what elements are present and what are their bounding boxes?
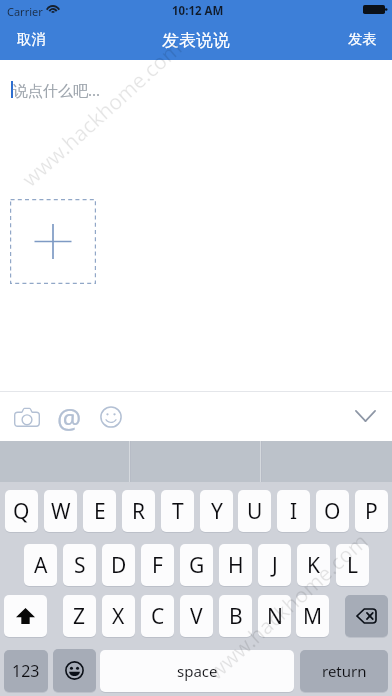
- staticText: S: [74, 551, 86, 580]
- button[interactable]: U: [238, 490, 271, 532]
- button[interactable]: M: [296, 595, 329, 637]
- button[interactable]: Q: [5, 490, 38, 532]
- button[interactable]: Add photo: [10, 199, 96, 284]
- button[interactable]: P: [355, 490, 388, 532]
- button[interactable]: 发表: [336, 20, 392, 58]
- button[interactable]: Backspace: [345, 595, 388, 637]
- button[interactable]: A: [24, 544, 57, 586]
- button[interactable]: I: [277, 490, 310, 532]
- staticText: G: [189, 551, 205, 580]
- staticText: M: [303, 602, 323, 631]
- button[interactable]: L: [336, 544, 369, 586]
- staticText: T: [172, 497, 184, 526]
- staticText: B: [229, 602, 243, 631]
- button[interactable]: K: [297, 544, 330, 586]
- staticText: I: [290, 497, 298, 526]
- button[interactable]: Camera: [9, 401, 45, 433]
- staticText: Y: [211, 497, 223, 526]
- staticText: 发表说说: [162, 30, 230, 51]
- button[interactable]: C: [141, 595, 174, 637]
- button[interactable]: S: [63, 544, 96, 586]
- staticText: X: [112, 602, 125, 631]
- staticText: K: [307, 551, 320, 580]
- staticText: O: [324, 497, 341, 526]
- button[interactable]: E: [83, 490, 116, 532]
- staticText: V: [190, 602, 203, 631]
- staticText: H: [228, 551, 244, 580]
- button[interactable]: 123: [4, 650, 48, 692]
- button[interactable]: F: [141, 544, 174, 586]
- button[interactable]: Emoji keyboard: [53, 649, 96, 692]
- staticText: return: [322, 661, 367, 681]
- staticText: R: [132, 497, 146, 526]
- button[interactable]: H: [219, 544, 252, 586]
- staticText: N: [267, 602, 283, 631]
- staticText: W: [51, 497, 71, 526]
- button[interactable]: return: [300, 650, 388, 692]
- staticText: P: [365, 497, 378, 526]
- button[interactable]: V: [180, 595, 213, 637]
- staticText: @: [57, 400, 82, 432]
- staticText: C: [151, 602, 165, 631]
- button[interactable]: 取消: [0, 20, 58, 58]
- staticText: J: [272, 551, 278, 580]
- staticText: Q: [13, 497, 30, 526]
- staticText: 说点什么吧...: [13, 80, 101, 100]
- button[interactable]: O: [316, 490, 349, 532]
- staticText: www.hackhome.com: [16, 34, 188, 193]
- button[interactable]: G: [180, 544, 213, 586]
- button[interactable]: R: [122, 490, 155, 532]
- staticText: 取消: [17, 30, 46, 48]
- button[interactable]: X: [102, 595, 135, 637]
- staticText: 发表: [348, 30, 377, 48]
- button[interactable]: Shift: [4, 595, 47, 637]
- button[interactable]: J: [258, 544, 291, 586]
- staticText: A: [34, 551, 48, 580]
- button[interactable]: Mention: [52, 401, 86, 433]
- staticText: www.hackhome.com: [202, 527, 374, 686]
- staticText: 123: [12, 660, 40, 682]
- staticText: F: [152, 551, 163, 580]
- button[interactable]: Y: [200, 490, 233, 532]
- button[interactable]: B: [219, 595, 252, 637]
- staticText: L: [347, 551, 359, 580]
- button[interactable]: W: [44, 490, 77, 532]
- staticText: U: [247, 497, 263, 526]
- staticText: D: [111, 551, 127, 580]
- button[interactable]: Emoji: [94, 401, 128, 433]
- staticText: Carrier: [7, 4, 43, 19]
- staticText: space: [177, 661, 218, 681]
- button[interactable]: N: [258, 595, 291, 637]
- button[interactable]: T: [161, 490, 194, 532]
- staticText: 10:12 AM: [172, 3, 224, 19]
- button[interactable]: space: [100, 650, 294, 692]
- staticText: E: [94, 497, 106, 526]
- staticText: Z: [73, 602, 86, 631]
- staticText: www.hackhome.com: [388, 34, 392, 193]
- button[interactable]: D: [102, 544, 135, 586]
- button[interactable]: Collapse keyboard: [347, 400, 383, 432]
- button[interactable]: Z: [63, 595, 96, 637]
